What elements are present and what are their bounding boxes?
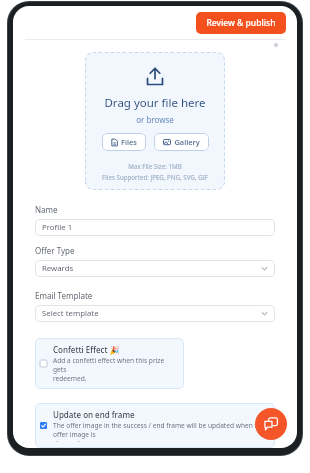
staticText: Files Supported: JPEG, PNG, SVG, GIF: [102, 173, 208, 181]
button[interactable]: Rewards: [35, 260, 275, 277]
staticText: Rewards: [42, 263, 261, 274]
staticText: Update on end frame: [53, 409, 268, 420]
button[interactable]: Chat support: [255, 408, 287, 440]
staticText: Files: [121, 137, 137, 147]
staticText: Max File Size: 1MB: [128, 162, 182, 170]
button[interactable]: Profile 1: [35, 219, 275, 236]
button[interactable]: Update on end frame: [35, 403, 275, 448]
staticText: Select template: [42, 308, 261, 319]
staticText: The offer image in the success / end fra…: [53, 421, 268, 442]
button[interactable]: Confetti Effect 🎉: [35, 338, 184, 389]
button[interactable]: Select template: [35, 305, 275, 322]
staticText: or browse: [136, 114, 174, 125]
button[interactable]: Gallery: [154, 133, 209, 151]
staticText: Review & publish: [206, 17, 276, 29]
staticText: Name: [35, 204, 275, 215]
button[interactable]: Review & publish: [196, 12, 286, 34]
staticText: Gallery: [174, 137, 200, 147]
staticText: Email Template: [35, 290, 275, 301]
button[interactable]: Files: [102, 133, 146, 151]
staticText: Offer Type: [35, 245, 275, 256]
staticText: Profile 1: [42, 222, 268, 233]
staticText: Drag your file here: [104, 95, 206, 111]
staticText: Confetti Effect 🎉: [53, 344, 177, 355]
staticText: Add a confetti effect when this prize ge…: [53, 356, 177, 383]
